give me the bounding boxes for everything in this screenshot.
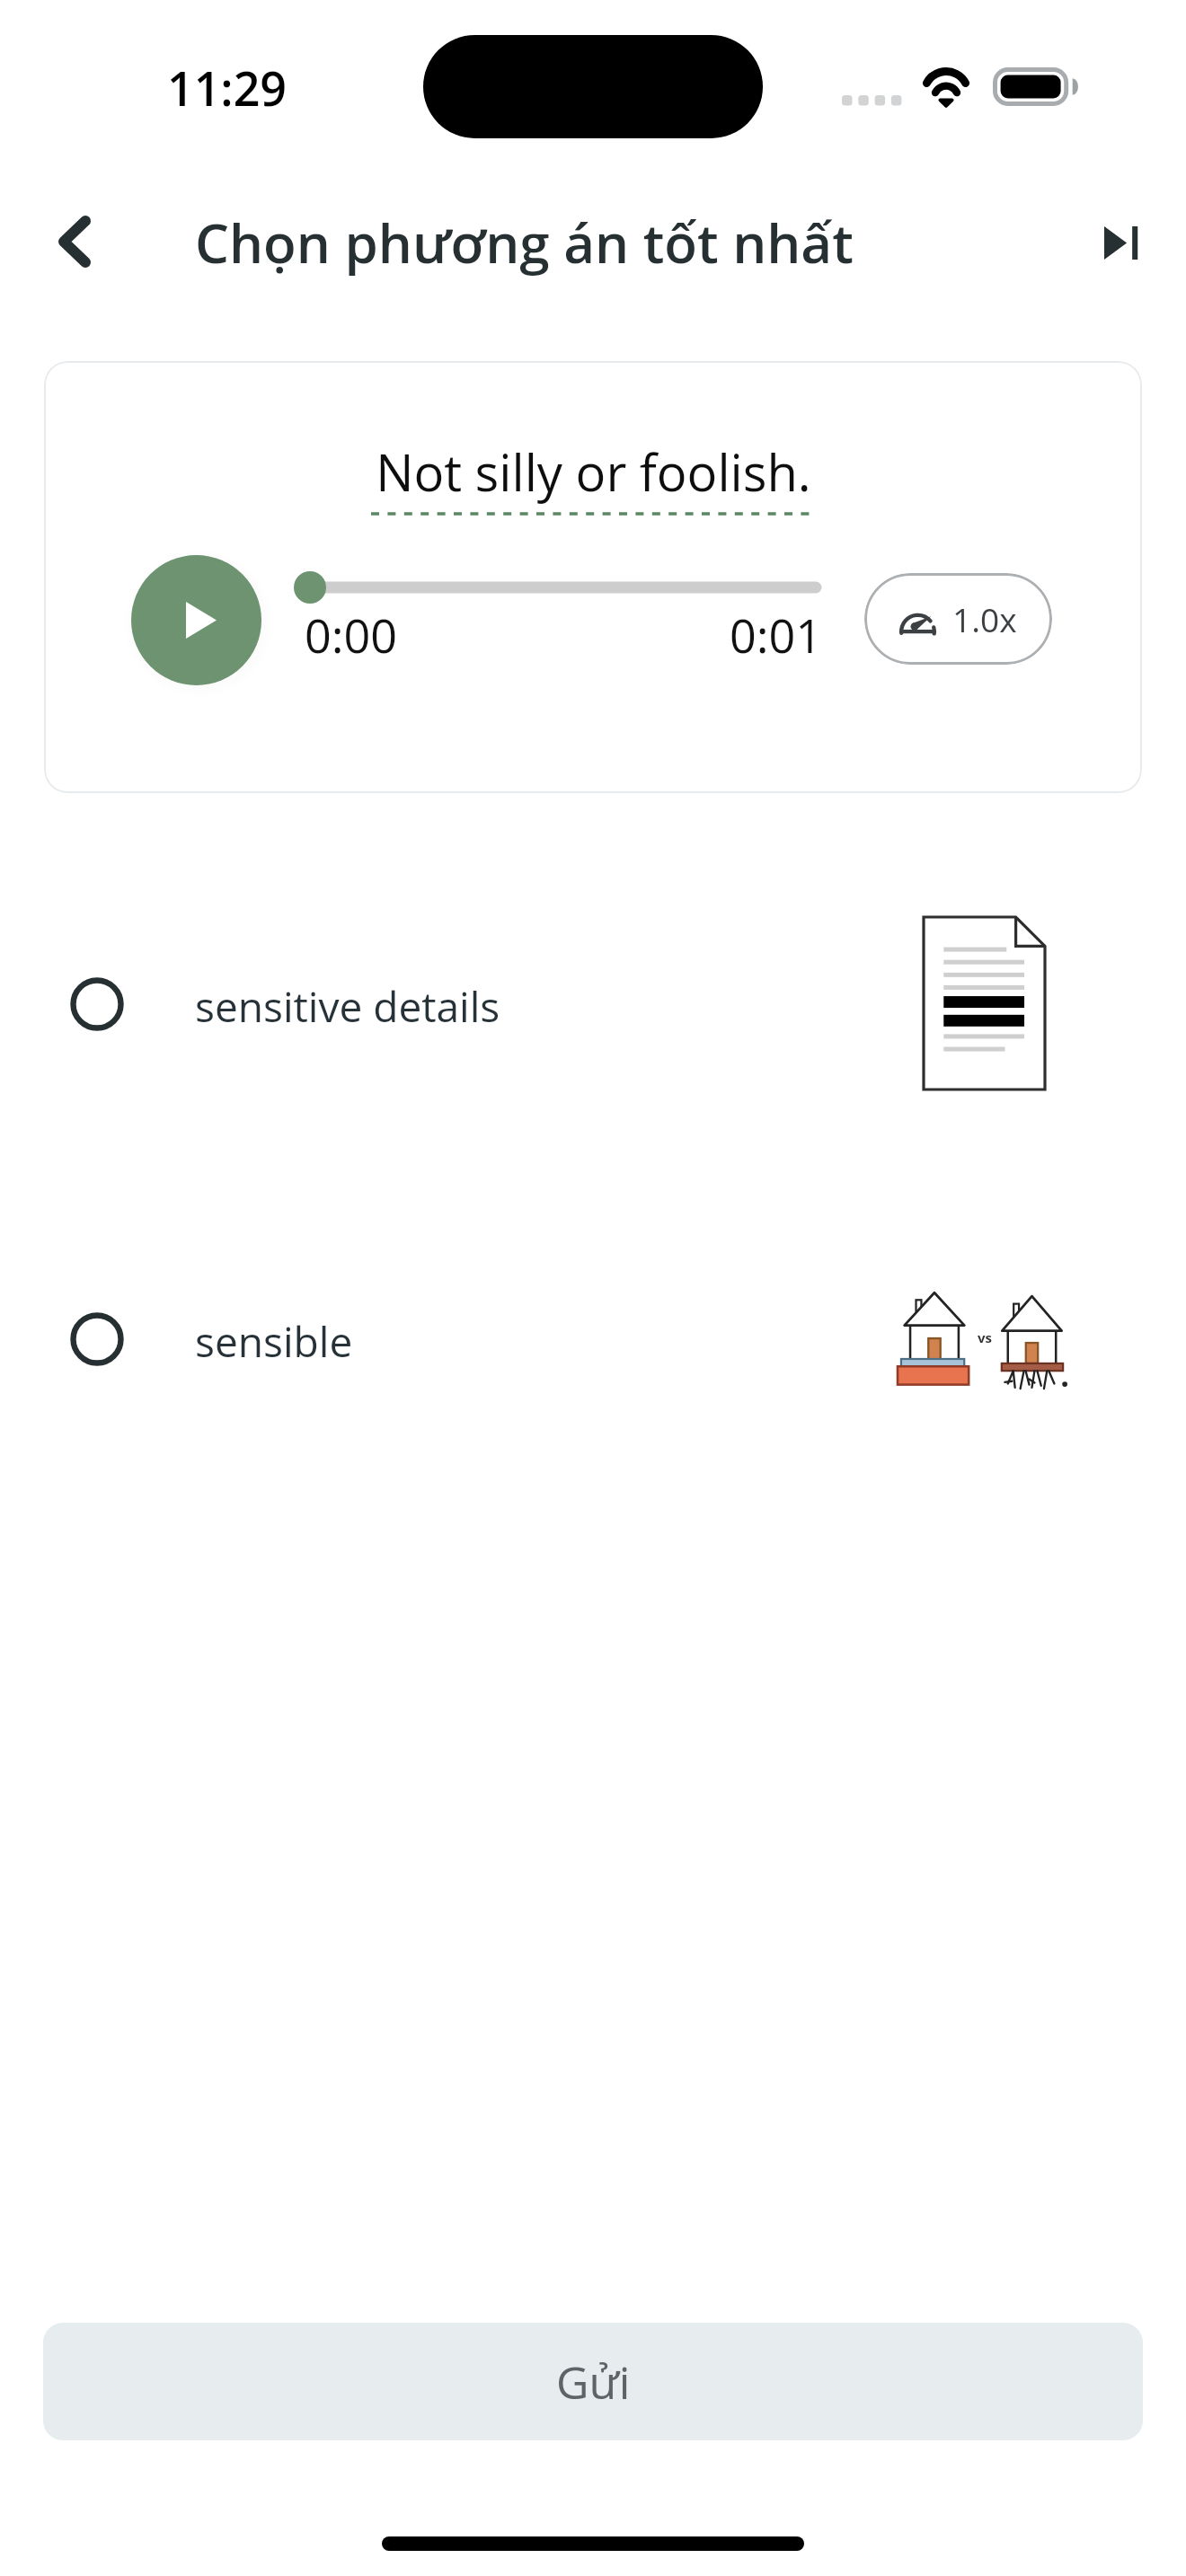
staticText: Gửi xyxy=(556,2351,631,2413)
staticText: sensitive details xyxy=(195,978,500,1035)
button[interactable]: sensible xyxy=(0,1240,1186,1438)
staticText: sensible xyxy=(195,1313,353,1370)
button[interactable]: Gửi xyxy=(43,2323,1143,2440)
button[interactable]: 1.0x xyxy=(864,573,1052,665)
button[interactable]: Skip to next xyxy=(1066,187,1177,298)
button[interactable]: Play xyxy=(131,555,261,685)
staticText: 1.0x xyxy=(952,596,1017,641)
staticText: vs xyxy=(978,1328,992,1346)
staticText: 0:01 xyxy=(730,603,823,666)
staticText: 11:29 xyxy=(167,56,288,119)
staticText: Chọn phương án tốt nhất xyxy=(195,206,854,279)
staticText: Not silly or foolish. xyxy=(376,437,811,506)
button[interactable]: sensitive details xyxy=(0,905,1186,1103)
button[interactable]: Back xyxy=(19,186,130,297)
button[interactable]: Seek xyxy=(294,569,822,605)
staticText: 0:00 xyxy=(305,603,398,666)
